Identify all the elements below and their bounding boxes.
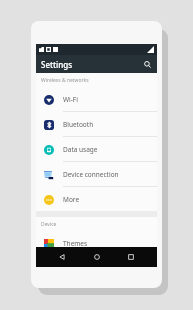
staticText: Wireless & networks [41,77,89,84]
staticText: Wi-Fi [63,95,78,104]
button[interactable]: Themes [36,231,157,255]
staticText: Data usage [63,145,98,154]
button[interactable]: Search [141,58,153,70]
button[interactable]: Home [89,249,105,265]
button[interactable]: Back [54,249,70,265]
staticText: Themes [63,239,88,248]
button[interactable]: Wi-Fi [36,87,157,111]
staticText: More [63,195,80,204]
button[interactable]: Device connection [36,162,157,186]
staticText: Device [41,221,57,228]
button[interactable]: Data usage [36,137,157,161]
button[interactable]: Bluetooth [36,112,157,136]
button[interactable]: More [36,187,157,211]
staticText: Settings [41,59,73,70]
staticText: Bluetooth [63,120,94,129]
staticText: Device connection [63,170,119,179]
button[interactable]: Recents [123,249,139,265]
